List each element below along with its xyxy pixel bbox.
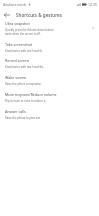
staticText: Answer calls <box>5 109 26 114</box>
button[interactable]: Mute ringtone/Reduce volume <box>0 90 99 106</box>
button[interactable]: Take screenshot <box>0 40 99 56</box>
button[interactable]: Answer calls <box>0 107 99 123</box>
staticText: Record screen <box>5 58 29 63</box>
staticText: Knock twice with two knuckles. <box>5 65 44 69</box>
staticText: Shortcuts & gestures <box>16 12 62 18</box>
staticText: Flip to mute or raise to reduce it. <box>5 99 47 103</box>
button[interactable]: Back <box>0 9 14 21</box>
staticText: Knock twice with one knuckle. <box>5 49 43 53</box>
button[interactable]: Record screen <box>0 56 99 72</box>
button[interactable]: Ultra snapshot <box>0 19 99 39</box>
button[interactable]: Wake screen <box>0 73 99 89</box>
staticText: Ultra snapshot <box>5 21 30 26</box>
staticText: Mute ringtone/Reduce volume <box>5 92 57 97</box>
staticText: Wake screen <box>5 75 27 80</box>
staticText: Take screenshot <box>5 42 33 47</box>
staticText: Raise the phone to your ear. <box>5 116 41 120</box>
staticText: Airplane mode <box>3 2 27 7</box>
staticText: Raise the phone or tap twice. <box>5 82 42 86</box>
staticText: 12:35 <box>88 2 97 7</box>
staticText: Quickly press the Volume down button twi… <box>5 28 54 36</box>
